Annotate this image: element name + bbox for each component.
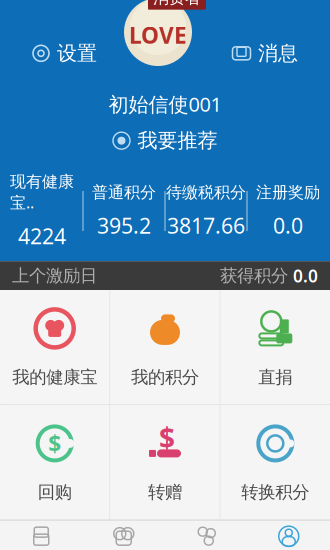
button[interactable]: 直捐 <box>221 290 330 404</box>
staticText: 4224 <box>18 222 66 250</box>
button[interactable]: 首页 <box>0 521 82 550</box>
staticText: 转赠 <box>148 482 182 503</box>
button[interactable]: 转换积分 <box>221 405 330 519</box>
button[interactable]: 我要推荐 <box>102 123 227 158</box>
staticText: $ <box>48 428 61 458</box>
button[interactable]: 消息 <box>224 35 306 72</box>
staticText: 直捐 <box>258 367 292 388</box>
staticText: LOVE <box>129 20 187 50</box>
button[interactable]: 头像 <box>124 0 206 66</box>
staticText: 回购 <box>38 482 72 503</box>
staticText: 395.2 <box>97 211 151 239</box>
button[interactable]: 我的健康宝 <box>0 290 109 404</box>
staticText: 我要推荐 <box>137 128 217 153</box>
staticText: 3817.66 <box>167 211 245 239</box>
staticText: 普通积分 <box>92 183 156 202</box>
staticText: 转换积分 <box>241 482 309 503</box>
staticText: 设置 <box>57 41 97 66</box>
staticText: 上个激励日 <box>12 265 97 286</box>
staticText: 现有健康宝.. <box>10 172 74 213</box>
button[interactable]: $ <box>110 405 220 519</box>
staticText: 待缴税积分 <box>166 183 246 202</box>
staticText: 消费者 <box>153 0 201 8</box>
staticText: 0.0 <box>288 264 318 287</box>
staticText: 消息 <box>258 41 298 66</box>
staticText: $ <box>159 419 175 456</box>
staticText: 我的积分 <box>131 367 199 388</box>
button[interactable]: 我的积分 <box>110 290 220 404</box>
staticText: 0.0 <box>273 211 303 239</box>
button[interactable]: $ <box>0 405 109 519</box>
button[interactable]: 我的 <box>247 521 330 550</box>
staticText: 获得积分 <box>220 265 288 286</box>
staticText: 初始信使001 <box>108 91 221 117</box>
staticText: 注册奖励 <box>256 183 320 202</box>
button[interactable]: 健康宝消费 <box>82 521 165 550</box>
staticText: 我的健康宝 <box>12 367 97 388</box>
button[interactable]: 联盟商家 <box>165 521 247 550</box>
button[interactable]: 设置 <box>24 35 105 72</box>
